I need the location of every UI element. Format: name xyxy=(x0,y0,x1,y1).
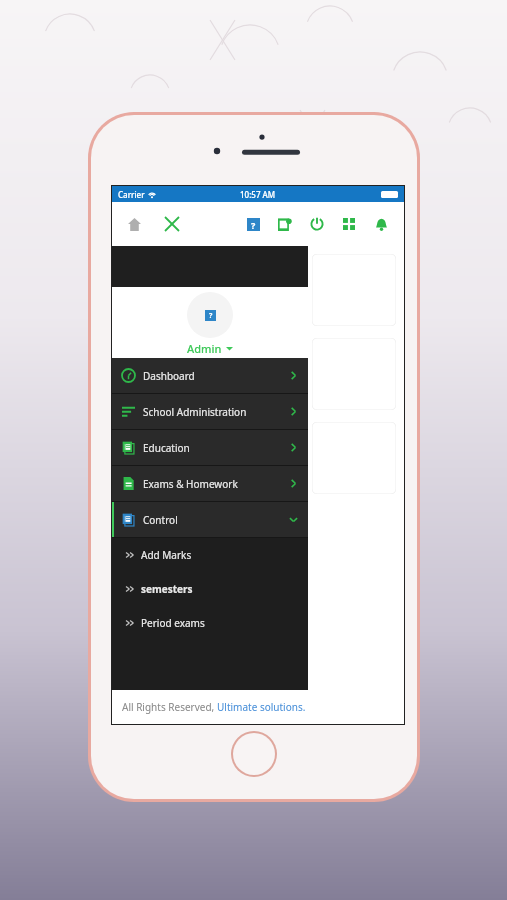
button[interactable]: Education xyxy=(112,430,308,465)
staticText: Control xyxy=(143,513,289,527)
staticText: School Administration xyxy=(143,405,289,419)
staticText: Carrier xyxy=(118,189,145,200)
staticText: semesters xyxy=(141,582,193,596)
button[interactable]: Profile picture xyxy=(187,292,233,338)
staticText: Admin xyxy=(187,341,222,356)
button[interactable]: Notifications xyxy=(368,211,394,237)
button[interactable]: Reports xyxy=(272,211,298,237)
staticText: Education xyxy=(143,441,289,455)
button[interactable]: Add Marks xyxy=(112,538,308,572)
button[interactable]: Period exams xyxy=(112,606,308,640)
staticText: 10:57 AM xyxy=(240,189,276,200)
button[interactable]: Control xyxy=(112,502,308,537)
staticText: Exams & Homework xyxy=(143,477,289,491)
staticText: ? xyxy=(251,219,256,231)
button[interactable]: School Administration xyxy=(112,394,308,429)
button[interactable]: Admin xyxy=(181,340,239,357)
button[interactable]: Close menu xyxy=(160,212,184,236)
button[interactable]: Home xyxy=(122,212,146,236)
button[interactable]: Logout xyxy=(304,211,330,237)
staticText: Add Marks xyxy=(141,548,192,562)
button[interactable]: semesters xyxy=(112,572,308,606)
staticText: All Rights Reserved, xyxy=(122,700,217,714)
other: Home button xyxy=(233,733,275,775)
staticText: Dashboard xyxy=(143,369,289,383)
button[interactable]: Exams & Homework xyxy=(112,466,308,501)
button[interactable]: Help xyxy=(240,211,266,237)
button[interactable]: Dashboard xyxy=(112,358,308,393)
button[interactable]: Ultimate solutions. xyxy=(217,700,306,714)
staticText: Period exams xyxy=(141,616,205,630)
staticText: ? xyxy=(209,311,213,321)
button[interactable]: Apps xyxy=(336,211,362,237)
